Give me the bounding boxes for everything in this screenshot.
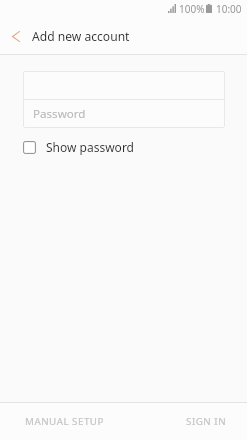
staticText: SIGN IN xyxy=(186,415,227,428)
button[interactable]: Navigate up xyxy=(0,18,31,54)
staticText: MANUAL SETUP xyxy=(25,415,104,428)
button[interactable]: Password xyxy=(23,100,225,128)
button[interactable]: Show password xyxy=(23,138,134,156)
staticText: 10:00 xyxy=(216,2,242,16)
button[interactable]: MANUAL SETUP xyxy=(8,403,123,440)
button[interactable] xyxy=(23,71,225,99)
staticText: 100% xyxy=(179,2,205,16)
staticText: Password xyxy=(33,106,86,122)
button[interactable]: SIGN IN xyxy=(123,403,239,440)
staticText: Add new account xyxy=(32,28,130,44)
staticText: Show password xyxy=(46,139,134,155)
